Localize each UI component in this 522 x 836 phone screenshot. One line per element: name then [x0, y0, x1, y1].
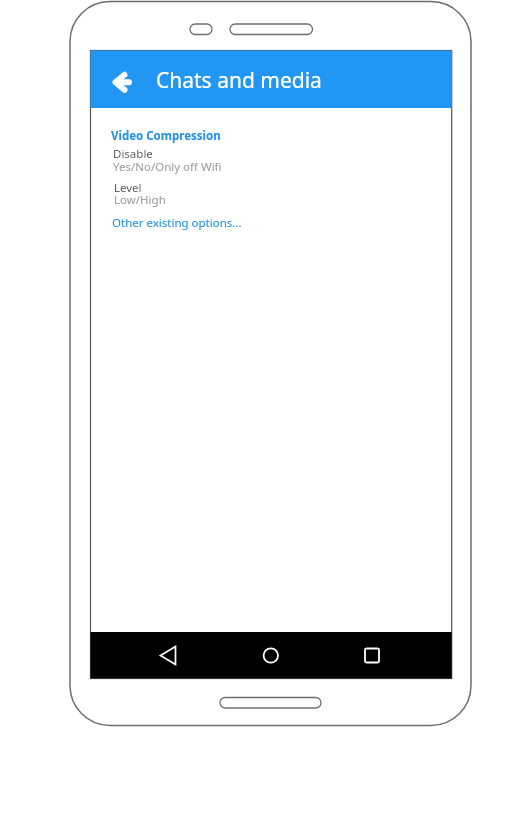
staticText: Yes/No/Only off Wifi	[113, 159, 222, 175]
staticText: Level	[114, 180, 142, 196]
staticText: Disable	[113, 146, 153, 162]
staticText: Low/High	[114, 192, 166, 208]
staticText: Video Compression	[111, 128, 221, 144]
staticText: Chats and media	[156, 66, 322, 95]
staticText: Other existing options...	[112, 215, 242, 231]
